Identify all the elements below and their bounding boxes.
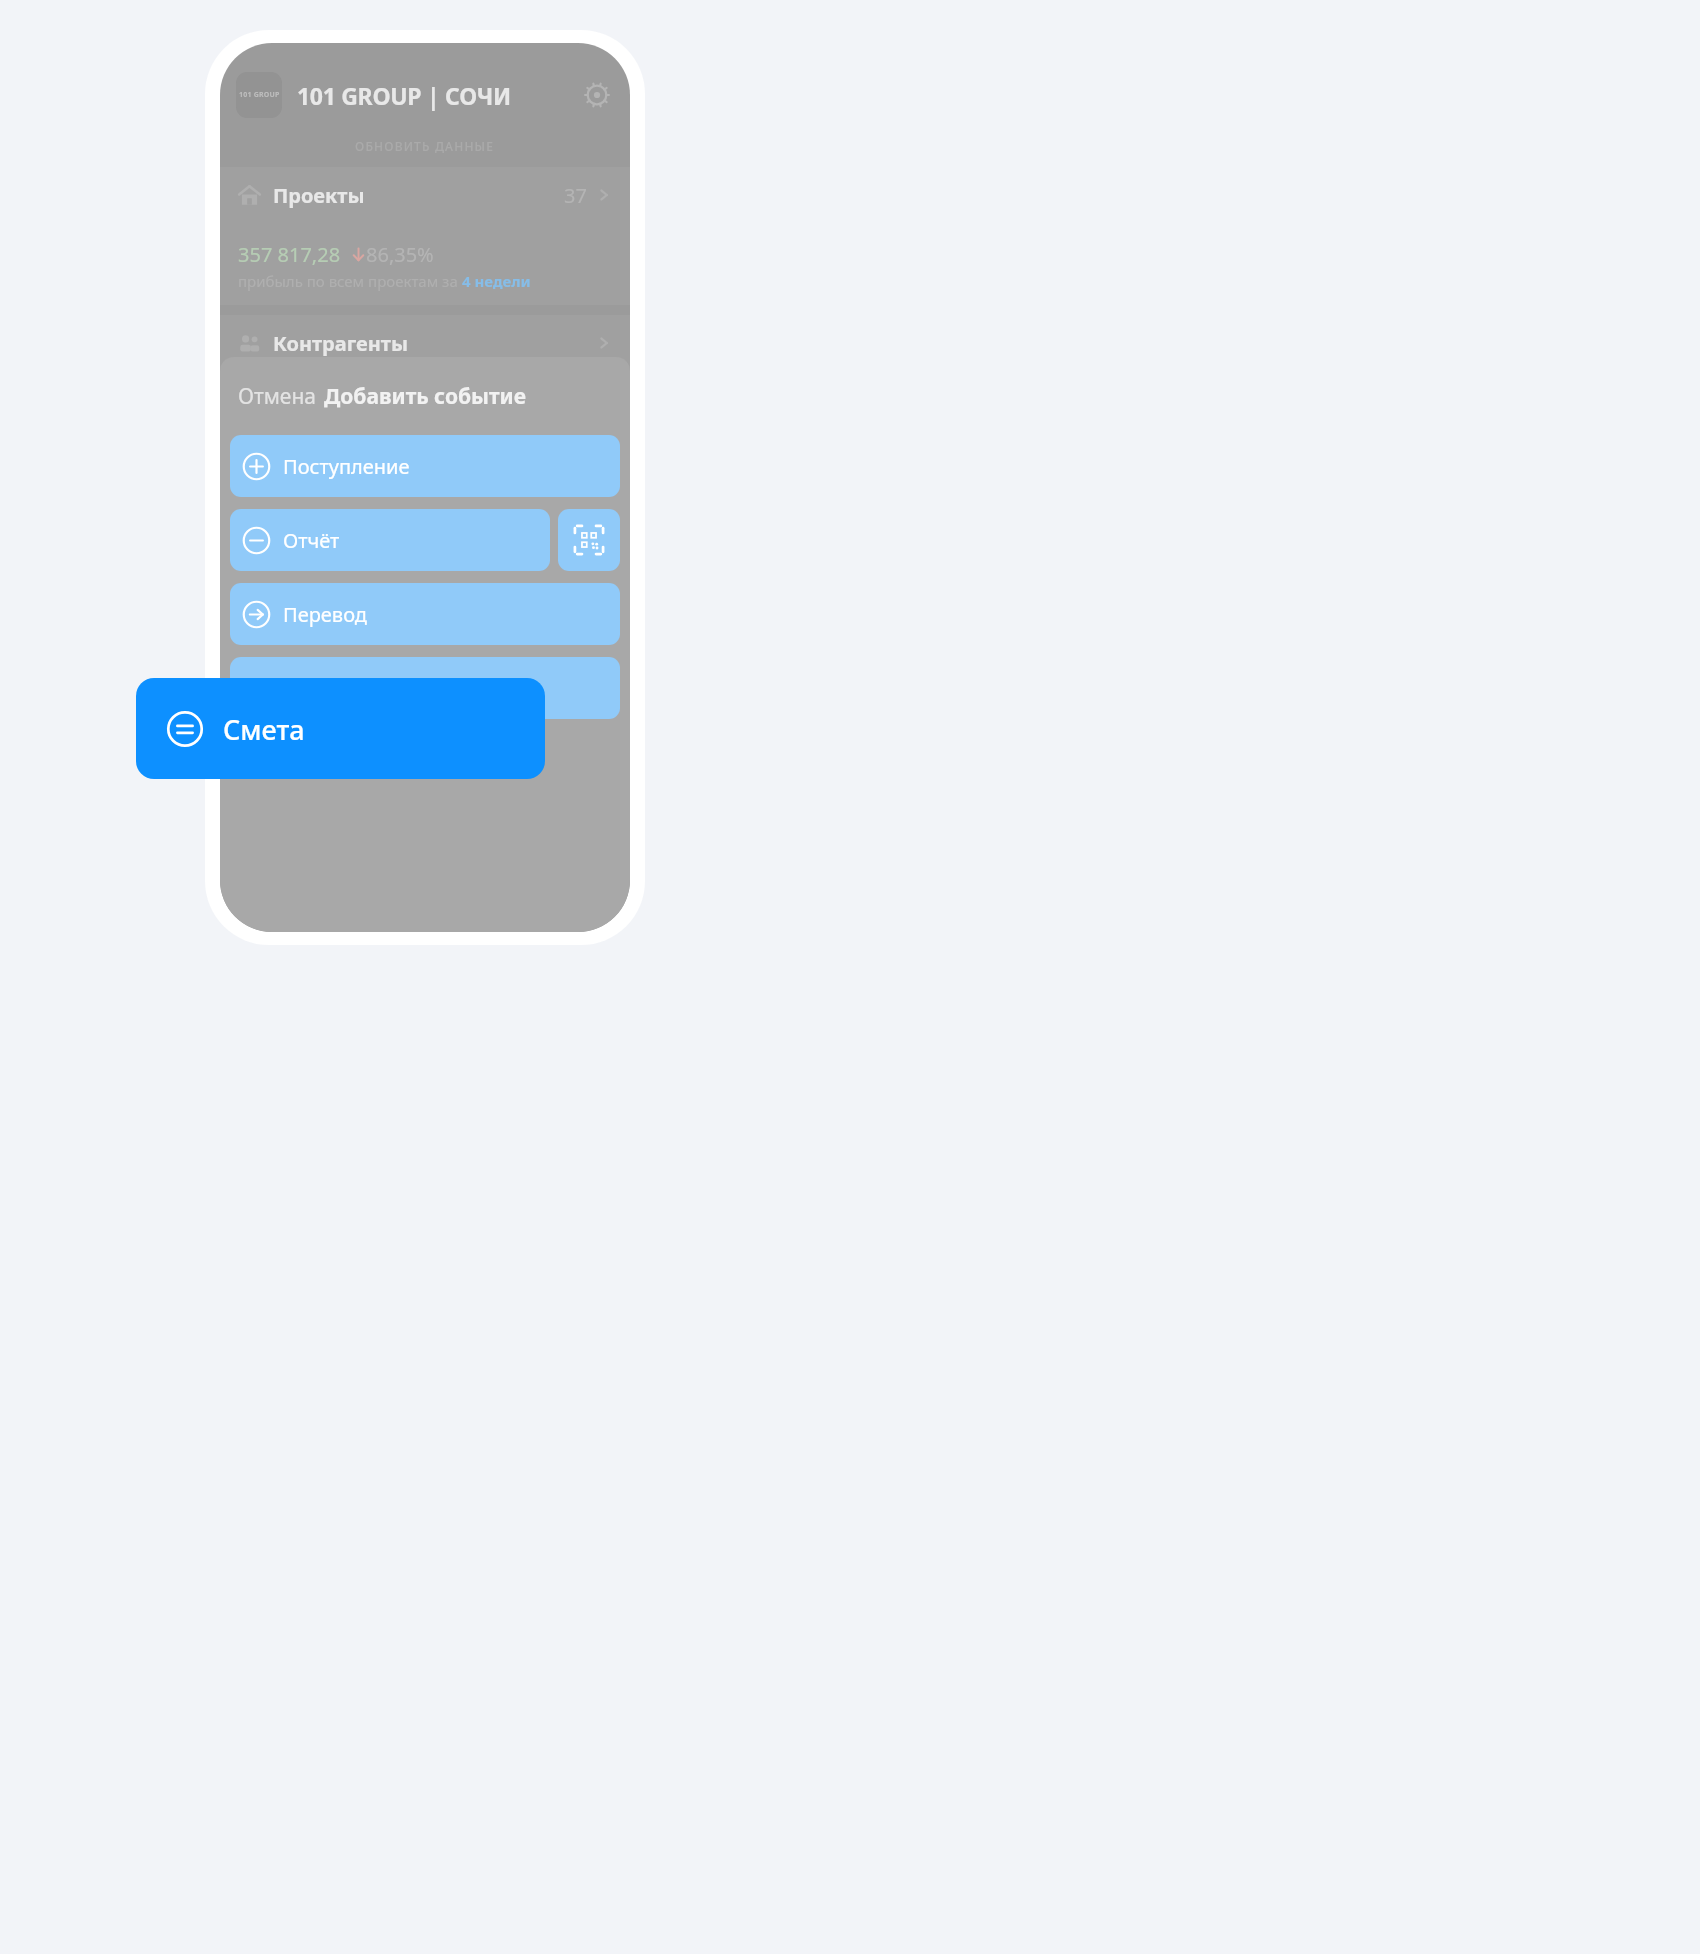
staticText: мой подотчетный баланс по проектам и [238,419,533,439]
staticText: 357 817,28 [238,241,341,268]
staticText: ОБНОВИТЬ ДАННЫЕ [355,138,495,154]
staticText: 101 GROUP [239,90,280,100]
staticText: прибыль по всем проектам за [238,271,462,291]
button[interactable]: Смета [136,678,545,779]
button[interactable] [230,657,620,719]
staticText: Контрагенты [273,330,408,357]
button[interactable]: Проекты [220,167,630,223]
staticText: 39 612,64 [238,389,329,416]
staticText: Фонду компании [238,439,363,459]
staticText: История событий [272,562,454,589]
staticText: 20 418 [525,562,588,589]
button[interactable]: История событий [220,544,630,606]
staticText: 4 [500,566,508,584]
button[interactable]: Сканировать QR-код [558,509,620,571]
button[interactable]: Настройки [580,78,614,112]
staticText: Отмена [238,382,317,411]
button[interactable]: 101 GROUP [236,72,282,118]
button[interactable]: Отмена [226,374,329,419]
button[interactable]: Поступление [230,435,620,497]
staticText: Добавить событие [324,382,526,411]
button[interactable]: Отчёт [230,509,550,571]
staticText: Поступление [283,453,410,480]
staticText: Смета [223,711,305,748]
staticText: 101 GROUP | СОЧИ [297,80,511,111]
staticText: Перевод [283,601,367,628]
button[interactable]: Контрагенты [220,315,630,371]
staticText: 4 недели [462,271,531,291]
staticText: Проекты [273,182,365,209]
staticText: 37 [564,182,587,209]
staticText: мой доход за 4 недели [238,500,404,520]
staticText: Прайс-листы [272,634,406,661]
staticText: 0 [238,475,248,497]
button[interactable]: Прайс-листы [220,616,630,678]
button[interactable]: Перевод [230,583,620,645]
staticText: 86,35% [366,241,434,268]
staticText: Отчёт [283,527,340,554]
